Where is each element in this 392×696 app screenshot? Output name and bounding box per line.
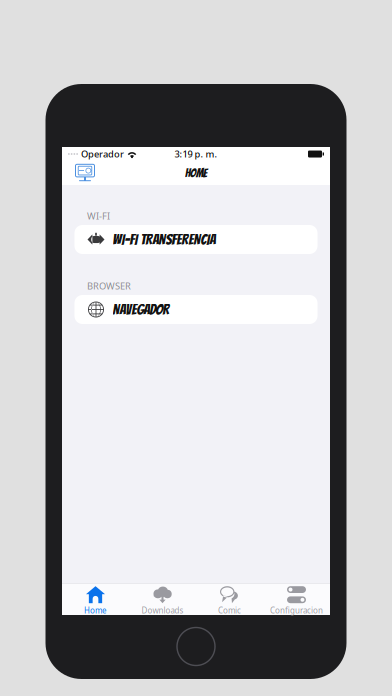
staticText: Home — [84, 605, 107, 616]
staticText: WI-FI TRANSFERENCIA — [112, 232, 215, 247]
button[interactable]: Comic — [196, 584, 263, 615]
button[interactable]: Downloads — [129, 584, 196, 615]
staticText: HOME — [185, 167, 207, 179]
staticText: Operador — [81, 148, 124, 160]
staticText: NAVEGADOR — [112, 302, 169, 317]
staticText: BROWSER — [87, 280, 131, 292]
staticText: WI-FI — [87, 210, 110, 222]
button[interactable]: Configuracion — [263, 584, 330, 615]
button[interactable]: WI-FI TRANSFERENCIA — [74, 225, 317, 254]
button[interactable]: Home — [62, 584, 129, 615]
staticText: 3:19 p. m. — [174, 148, 217, 160]
staticText: Downloads — [141, 605, 183, 616]
staticText: Comic — [218, 605, 241, 616]
button[interactable]: Display — [73, 161, 97, 185]
button[interactable]: NAVEGADOR — [74, 295, 317, 324]
staticText: Configuracion — [270, 605, 323, 616]
